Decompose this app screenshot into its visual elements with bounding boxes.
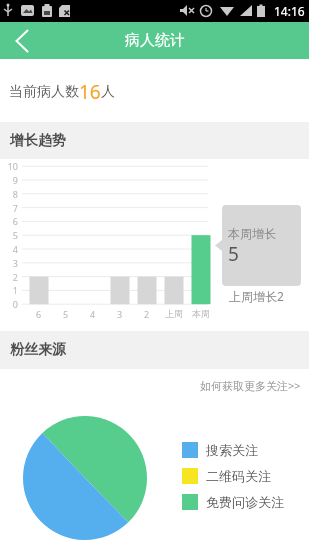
button[interactable] [0,22,44,59]
staticText: 4 [12,243,18,255]
button[interactable]: 如何获取更多关注>> [200,378,301,393]
staticText: 0 [12,298,18,310]
staticText: 3 [117,308,123,320]
staticText: 5 [12,229,18,241]
staticText: 人 [101,83,115,101]
staticText: 上周 [165,308,183,319]
staticText: 6 [12,215,18,227]
staticText: 病人统计 [125,31,185,50]
staticText: 搜索关注 [206,442,258,458]
staticText: 3 [12,257,18,269]
staticText: 8 [12,188,18,200]
staticText: 本周增长 [228,226,276,241]
staticText: 上周增长2 [229,288,284,304]
staticText: 2 [12,271,18,283]
staticText: 5 [228,241,239,267]
staticText: 2 [144,308,150,320]
staticText: 5 [63,308,69,320]
staticText: 4 [90,308,96,320]
staticText: 免费问诊关注 [206,494,284,510]
staticText: 16 [79,79,101,105]
staticText: 当前病人数 [9,83,79,101]
staticText: 本周 [192,308,210,319]
staticText: 9 [12,174,18,186]
staticText: 粉丝来源 [10,341,66,359]
staticText: 10 [7,160,18,172]
staticText: 增长趋势 [10,132,66,150]
staticText: 二维码关注 [206,468,271,484]
staticText: 7 [12,202,18,214]
staticText: 1 [12,284,18,296]
staticText: 6 [36,308,42,320]
staticText: 14:16 [274,3,305,19]
